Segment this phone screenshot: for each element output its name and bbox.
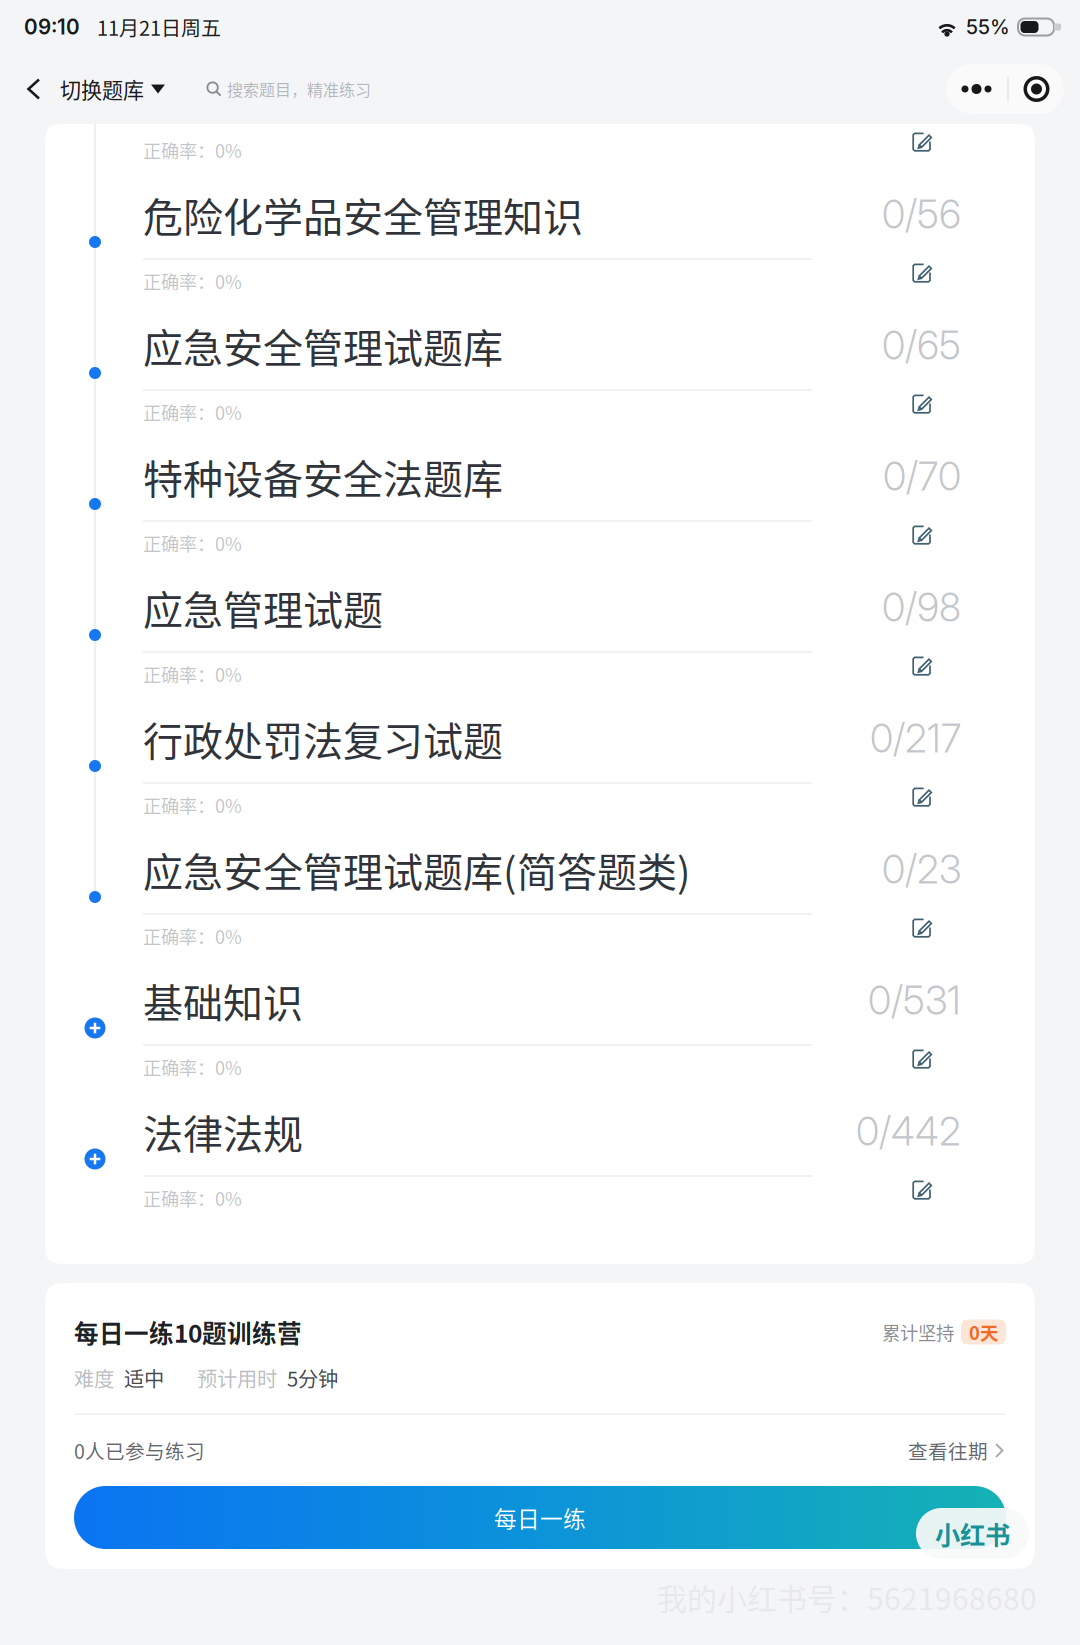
staticText: 应急管理试题 (143, 578, 383, 636)
staticText: 正确率：0% (143, 530, 242, 556)
staticText: 09:10 (24, 14, 80, 39)
staticText: 正确率：0% (143, 1054, 242, 1080)
button[interactable]: 法律法规 (45, 1088, 1035, 1219)
button[interactable]: 搜索题目，精准练习 (206, 57, 371, 121)
staticText: 累计坚持 (882, 1319, 954, 1345)
button[interactable]: 查看往期 (908, 1436, 1006, 1465)
button[interactable]: 危险化学品安全管理知识 (45, 171, 1035, 302)
button[interactable]: 切换题库 (56, 57, 171, 121)
staticText: 0/65 (882, 322, 961, 369)
staticText: 正确率：0% (143, 137, 242, 163)
button[interactable]: 应急安全管理试题库(简答题类) (45, 826, 1035, 957)
staticText: 难度 (74, 1363, 114, 1393)
button[interactable]: 更多 (946, 64, 1064, 114)
staticText: 每日一练10题训练营 (74, 1314, 302, 1350)
staticText: 应急安全管理试题库(简答题类) (143, 840, 691, 898)
staticText: 小红书 (935, 1515, 1010, 1552)
staticText: 0/23 (882, 846, 961, 893)
staticText: 55% (966, 15, 1010, 39)
staticText: 0/98 (882, 584, 961, 631)
staticText: 0/531 (868, 977, 961, 1024)
staticText: 行政处罚法复习试题 (143, 709, 503, 767)
button[interactable]: 行政处罚法复习试题 (45, 695, 1035, 826)
staticText: 法律法规 (143, 1102, 303, 1160)
staticText: 切换题库 (60, 74, 144, 104)
staticText: 0/442 (856, 1108, 961, 1155)
staticText: 11月21日周五 (97, 12, 221, 41)
staticText: 基础知识 (143, 971, 303, 1029)
staticText: 特种设备安全法题库 (143, 447, 503, 505)
staticText: 0/217 (870, 715, 961, 762)
staticText: 正确率：0% (143, 661, 242, 687)
staticText: 正确率：0% (143, 792, 242, 818)
staticText: 搜索题目，精准练习 (227, 77, 371, 101)
staticText: 0/70 (883, 453, 961, 500)
staticText: 正确率：0% (143, 923, 242, 949)
staticText: 危险化学品安全管理知识 (143, 185, 583, 243)
staticText: 正确率：0% (143, 399, 242, 425)
staticText: 0人已参与练习 (74, 1436, 205, 1465)
staticText: 每日一练 (494, 1501, 586, 1534)
staticText: 预计用时 (197, 1363, 277, 1393)
button[interactable]: 特种设备安全法题库 (45, 433, 1035, 564)
staticText: 正确率：0% (143, 1185, 242, 1211)
staticText: 正确率：0% (143, 268, 242, 294)
button[interactable]: 返回 (12, 57, 56, 121)
staticText: 我的小红书号：5621968680 (657, 1575, 1037, 1619)
staticText: 0/56 (882, 191, 961, 238)
button[interactable]: 应急安全管理试题库 (45, 302, 1035, 433)
button[interactable]: 每日一练 (74, 1486, 1006, 1549)
button[interactable]: 应急管理试题 (45, 564, 1035, 695)
staticText: 适中 (124, 1363, 164, 1393)
staticText: 0天 (969, 1319, 998, 1345)
staticText: 应急安全管理试题库 (143, 316, 503, 374)
button[interactable]: 基础知识 (45, 957, 1035, 1088)
staticText: 5分钟 (287, 1363, 338, 1393)
staticText: 查看往期 (908, 1436, 988, 1465)
